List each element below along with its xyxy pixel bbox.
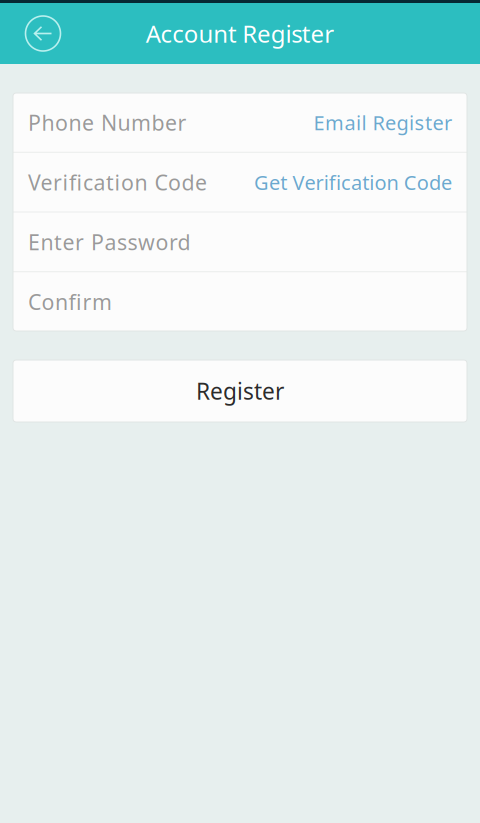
- staticText: Register: [196, 376, 284, 406]
- staticText: Verification Code: [28, 168, 207, 196]
- staticText: Get Verification Code: [254, 169, 452, 195]
- button[interactable]: Enter Password: [28, 212, 452, 271]
- button[interactable]: Confirm: [28, 272, 452, 331]
- button[interactable]: Get Verification Code: [254, 153, 452, 212]
- button[interactable]: Phone Number: [28, 93, 307, 152]
- staticText: Account Register: [146, 18, 334, 49]
- button[interactable]: Back: [21, 11, 65, 55]
- button[interactable]: Email Register: [313, 93, 452, 152]
- button[interactable]: Verification Code: [28, 153, 248, 212]
- button[interactable]: Register: [13, 360, 467, 422]
- staticText: Enter Password: [28, 228, 190, 256]
- staticText: Email Register: [313, 109, 452, 136]
- staticText: Confirm: [28, 287, 112, 316]
- staticText: Phone Number: [28, 108, 186, 136]
